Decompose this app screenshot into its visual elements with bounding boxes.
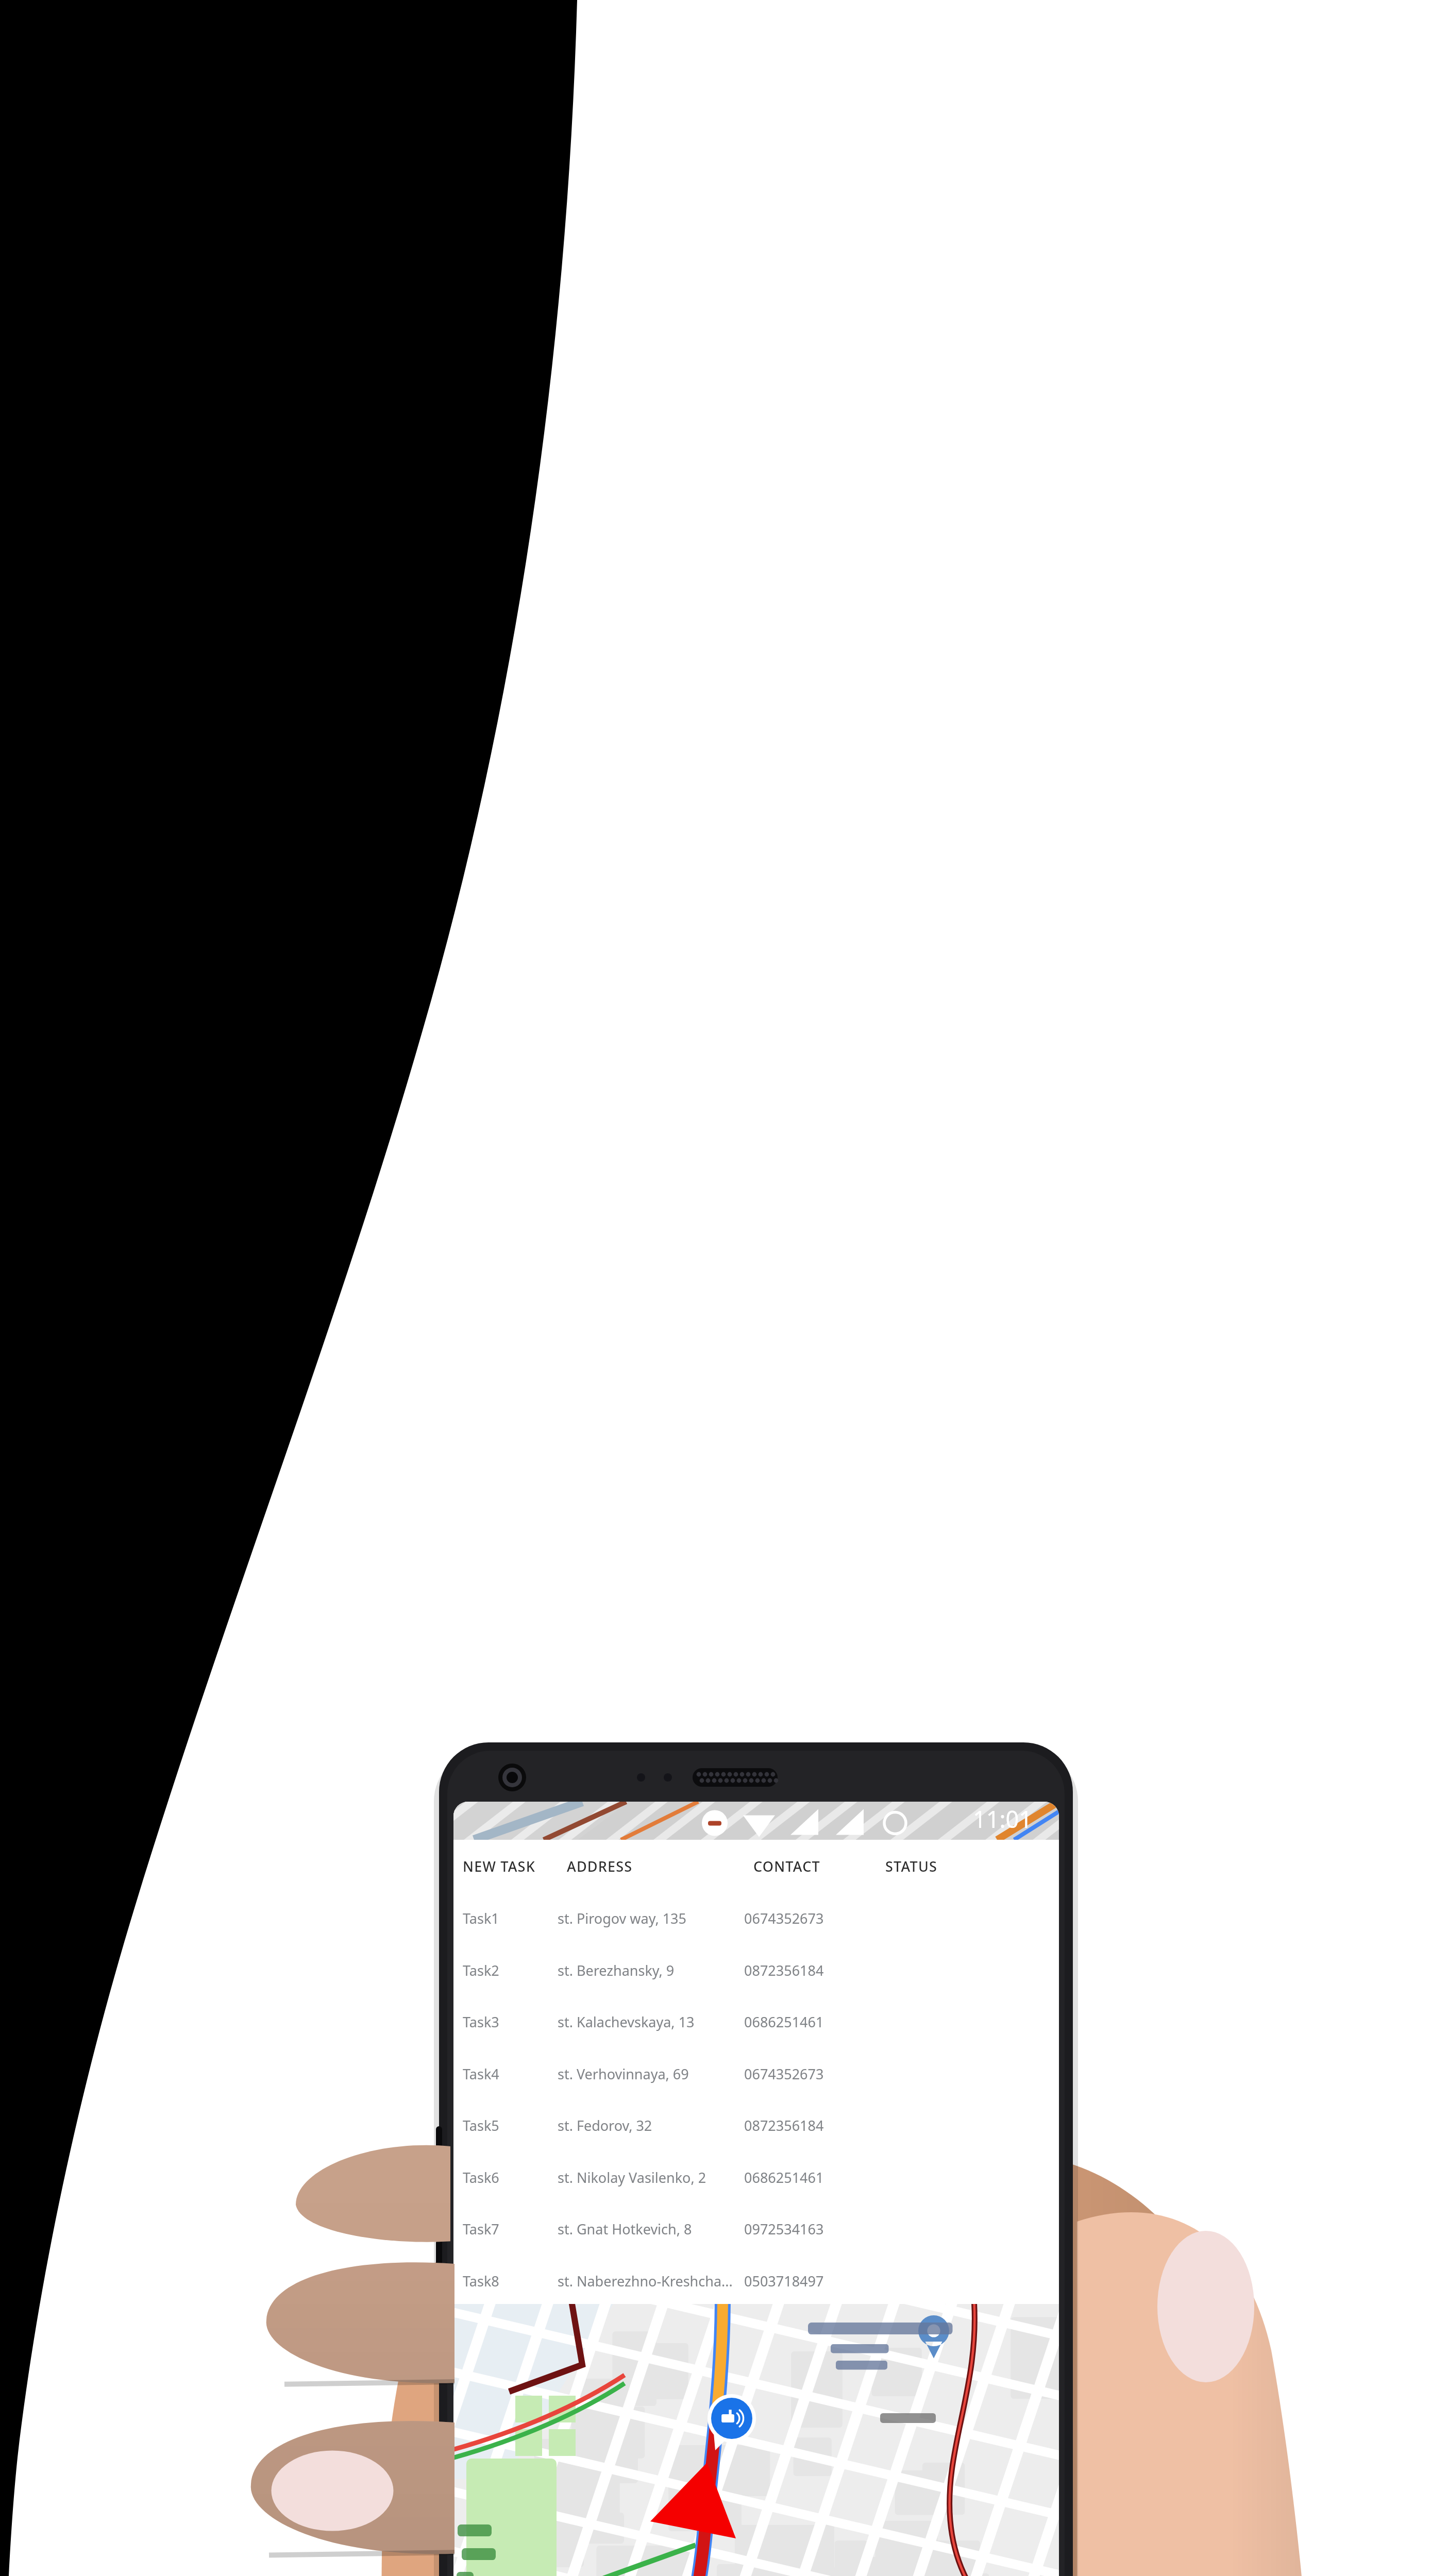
staticText: Task2 bbox=[463, 1961, 499, 1980]
staticText: st. Gnat Hotkevich, 8 bbox=[558, 2219, 692, 2239]
staticText: Task4 bbox=[463, 2064, 499, 2083]
staticText: Task1 bbox=[463, 1909, 499, 1928]
staticText: 0503718497 bbox=[744, 2272, 824, 2291]
staticText: Task8 bbox=[463, 2272, 499, 2291]
staticText: STATUS bbox=[885, 1857, 938, 1876]
staticText: st. Nikolay Vasilenko, 2 bbox=[558, 2168, 706, 2187]
button[interactable]: Task2 bbox=[453, 1952, 1059, 1988]
button[interactable]: Task3 bbox=[453, 2004, 1059, 2040]
staticText: ADDRESS bbox=[567, 1857, 633, 1876]
button[interactable]: Task5 bbox=[453, 2107, 1059, 2143]
button[interactable]: NEW TASK bbox=[463, 1857, 535, 1876]
button[interactable]: Task6 bbox=[453, 2159, 1059, 2195]
staticText: st. Naberezhno-Kreshcha... bbox=[558, 2272, 733, 2291]
button[interactable]: Task7 bbox=[453, 2211, 1059, 2247]
button[interactable]: Task8 bbox=[453, 2263, 1059, 2299]
staticText: 0872356184 bbox=[744, 1961, 824, 1980]
button[interactable]: STATUS bbox=[885, 1857, 938, 1876]
staticText: Task3 bbox=[463, 2012, 499, 2031]
staticText: 0972534163 bbox=[744, 2219, 824, 2239]
staticText: 0674352673 bbox=[744, 1909, 824, 1928]
staticText: st. Kalachevskaya, 13 bbox=[558, 2012, 695, 2031]
staticText: 0872356184 bbox=[744, 2116, 824, 2135]
button[interactable]: Vehicle marker bbox=[731, 2389, 787, 2446]
staticText: Task7 bbox=[463, 2219, 499, 2239]
button[interactable]: CONTACT bbox=[753, 1857, 820, 1876]
button[interactable]: ADDRESS bbox=[567, 1857, 633, 1876]
staticText: 0674352673 bbox=[744, 2064, 824, 2083]
staticText: 0686251461 bbox=[744, 2012, 824, 2031]
button[interactable]: Task1 bbox=[453, 1900, 1059, 1936]
staticText: 11:01 bbox=[973, 1803, 1033, 1835]
staticText: st. Pirogov way, 135 bbox=[558, 1909, 686, 1928]
staticText: Task5 bbox=[463, 2116, 499, 2135]
staticText: st. Verhovinnaya, 69 bbox=[558, 2064, 689, 2083]
staticText: st. Fedorov, 32 bbox=[558, 2116, 652, 2135]
staticText: CONTACT bbox=[753, 1857, 820, 1876]
staticText: 0686251461 bbox=[744, 2168, 824, 2187]
staticText: st. Berezhansky, 9 bbox=[558, 1961, 675, 1980]
staticText: Task6 bbox=[463, 2168, 499, 2187]
button[interactable]: Task4 bbox=[453, 2056, 1059, 2092]
staticText: NEW TASK bbox=[463, 1857, 535, 1876]
